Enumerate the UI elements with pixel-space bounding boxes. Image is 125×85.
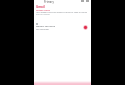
staticText: app on phone bbox=[36, 13, 50, 16]
staticText: Google Alerts bbox=[36, 9, 51, 12]
staticText: Weekly Trip Work bbox=[36, 25, 56, 28]
button[interactable]: Compose bbox=[83, 25, 88, 30]
button[interactable]: Weekly Trip Work bbox=[34, 25, 91, 32]
button[interactable]: Google Alerts bbox=[34, 9, 91, 17]
staticText: trip reminder bbox=[36, 28, 50, 31]
staticText: Gmail bbox=[36, 5, 45, 9]
staticText: Your weekly security digest is ready to … bbox=[36, 11, 88, 14]
staticText: Primary bbox=[44, 0, 54, 4]
